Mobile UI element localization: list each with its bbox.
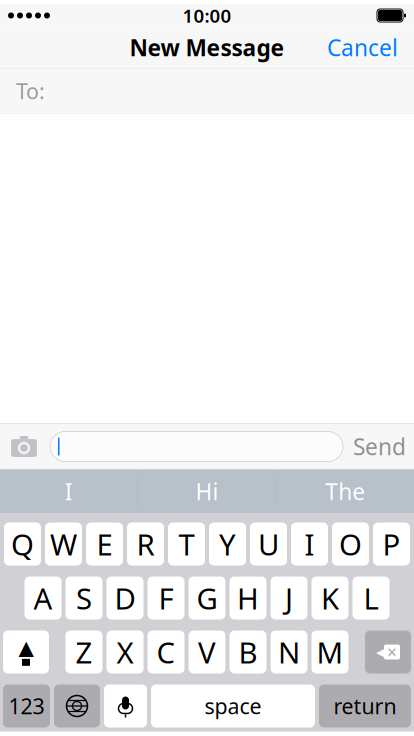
button[interactable]: L [352, 576, 389, 619]
staticText: C [156, 632, 175, 671]
button[interactable]: I [0, 469, 137, 513]
staticText: I [65, 476, 73, 506]
staticText: A [33, 578, 52, 617]
button[interactable]: Dictate [104, 684, 147, 727]
button[interactable]: Hi [138, 469, 276, 513]
staticText: N [278, 632, 300, 671]
button[interactable]: N [270, 630, 307, 673]
staticText: Z [75, 632, 92, 671]
button[interactable]: E [86, 522, 123, 565]
staticText: O [339, 524, 362, 563]
staticText: X [116, 632, 133, 671]
staticText: B [238, 632, 257, 671]
staticText: H [237, 578, 259, 617]
button[interactable]: V [188, 630, 225, 673]
button[interactable]: Q [4, 522, 41, 565]
staticText: New Message [129, 32, 284, 62]
button[interactable]: X [106, 630, 143, 673]
button[interactable]: R [127, 522, 164, 565]
button[interactable]: U [250, 522, 287, 565]
staticText: Y [219, 524, 236, 563]
button[interactable]: B [229, 630, 266, 673]
staticText: Cancel [327, 32, 398, 62]
staticText: To: [16, 77, 45, 105]
button[interactable]: Cancel [317, 22, 408, 72]
staticText: D [114, 578, 135, 617]
staticText: Q [11, 524, 34, 563]
staticText: T [178, 524, 194, 563]
button[interactable]: space [151, 684, 315, 727]
staticText: V [198, 632, 216, 671]
button[interactable]: Shift [3, 630, 49, 673]
button[interactable]: The [276, 469, 414, 513]
button[interactable]: O [332, 522, 369, 565]
staticText: L [363, 578, 378, 617]
staticText: J [285, 578, 293, 617]
staticText: 10:00 [182, 3, 231, 28]
button[interactable]: F [147, 576, 184, 619]
button[interactable]: Delete [365, 630, 411, 673]
button[interactable]: K [311, 576, 348, 619]
button[interactable]: 123 [3, 684, 50, 727]
button[interactable]: return [319, 684, 411, 727]
button[interactable]: P [373, 522, 410, 565]
staticText: ▲ [18, 636, 33, 659]
staticText: M [316, 632, 343, 671]
button[interactable]: W [45, 522, 82, 565]
staticText: Hi [195, 476, 218, 506]
staticText: E [96, 524, 112, 563]
staticText: ◀ [376, 644, 387, 660]
staticText: K [321, 578, 339, 617]
button[interactable]: G [188, 576, 225, 619]
staticText: 123 [8, 692, 44, 720]
staticText: S [76, 578, 92, 617]
staticText: Send [353, 431, 406, 461]
staticText: return [333, 692, 396, 720]
staticText: G [196, 578, 217, 617]
staticText: The [325, 476, 365, 506]
button[interactable]: D [106, 576, 143, 619]
button[interactable]: To: [0, 68, 414, 113]
button[interactable]: H [229, 576, 266, 619]
button[interactable]: T [168, 522, 205, 565]
staticText: space [204, 692, 261, 720]
button[interactable]: Z [65, 630, 102, 673]
button[interactable]: M [311, 630, 348, 673]
staticText: R [136, 524, 154, 563]
button[interactable]: Add photo [8, 430, 40, 462]
button[interactable]: S [65, 576, 102, 619]
button[interactable]: A [24, 576, 61, 619]
staticText: U [258, 524, 279, 563]
button[interactable]: Send [353, 423, 406, 469]
button[interactable]: Y [209, 522, 246, 565]
button[interactable]: Next keyboard [54, 684, 100, 727]
staticText: W [50, 524, 77, 563]
button[interactable]: C [147, 630, 184, 673]
staticText: P [382, 524, 400, 563]
staticText: × [387, 640, 397, 663]
button[interactable]: I [291, 522, 328, 565]
staticText: I [304, 524, 314, 563]
button[interactable]: J [270, 576, 307, 619]
staticText: F [158, 578, 173, 617]
